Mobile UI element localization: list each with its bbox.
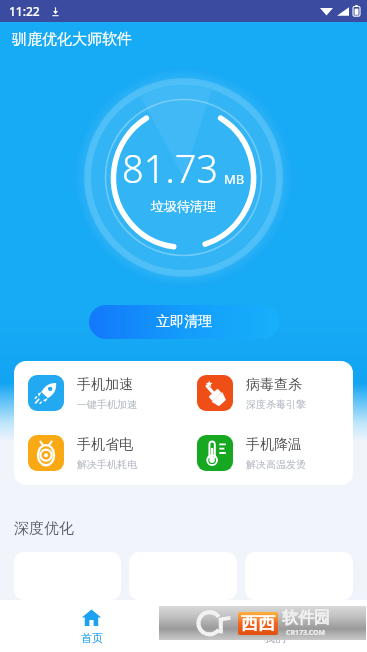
staticText: 深度优化 [14, 519, 74, 538]
button[interactable]: 手机降温 [183, 435, 353, 471]
staticText: 深度杀毒引擎 [246, 398, 306, 411]
staticText: 11:22 [9, 3, 40, 19]
staticText: MB [224, 170, 245, 188]
staticText: 立即清理 [156, 313, 212, 331]
button[interactable]: 首页 [0, 600, 183, 652]
button[interactable]: 手机加速 [14, 375, 183, 411]
staticText: 病毒查杀 [246, 376, 302, 394]
staticText: 驯鹿优化大师软件 [12, 30, 132, 49]
staticText: 手机降温 [246, 436, 302, 454]
staticText: 我的 [264, 631, 286, 645]
button[interactable]: 病毒查杀 [183, 375, 353, 411]
staticText: 软件园 [282, 608, 330, 628]
staticText: 西西 [241, 613, 275, 634]
staticText: 解决高温发烫 [246, 458, 306, 471]
staticText: 解决手机耗电 [77, 458, 137, 471]
button[interactable]: 立即清理 [89, 305, 279, 339]
staticText: 手机加速 [77, 376, 133, 394]
staticText: CR173.COM [286, 628, 326, 638]
button[interactable]: 手机省电 [14, 435, 183, 471]
staticText: 一键手机加速 [77, 398, 137, 411]
staticText: 81.73 [122, 142, 219, 194]
button[interactable]: 我的 [183, 600, 367, 652]
staticText: 首页 [81, 631, 103, 645]
staticText: 垃圾待清理 [151, 198, 216, 214]
staticText: 手机省电 [77, 436, 133, 454]
